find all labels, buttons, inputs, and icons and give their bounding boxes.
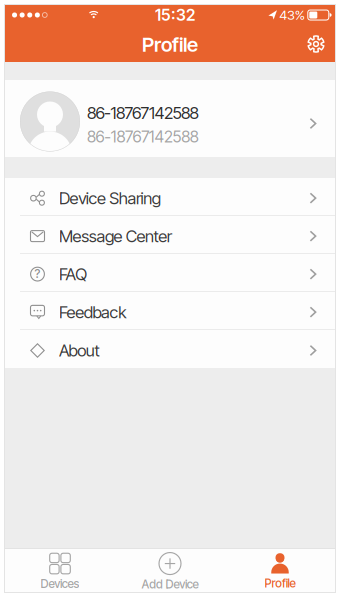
staticText: FAQ: [59, 264, 87, 284]
button[interactable]: Device Sharing: [5, 178, 335, 216]
button[interactable]: Message Center: [5, 216, 335, 254]
button[interactable]: Settings: [307, 27, 335, 61]
staticText: Message Center: [59, 226, 172, 246]
staticText: 86-18767142588: [87, 127, 199, 146]
staticText: Devices: [41, 577, 79, 591]
button[interactable]: About: [5, 330, 335, 368]
staticText: Profile: [142, 32, 198, 57]
staticText: ?: [34, 266, 40, 281]
staticText: Add Device: [141, 577, 199, 591]
staticText: 86-18767142588: [87, 103, 198, 123]
button[interactable]: Profile: [225, 549, 335, 592]
staticText: Feedback: [59, 302, 126, 322]
button[interactable]: Feedback: [5, 292, 335, 330]
button[interactable]: Devices: [5, 549, 115, 592]
button[interactable]: ?: [5, 254, 335, 292]
staticText: About: [59, 340, 99, 361]
staticText: Profile: [265, 576, 295, 590]
staticText: 43%: [279, 7, 305, 23]
staticText: Device Sharing: [59, 188, 161, 208]
button[interactable]: 86-18767142588: [5, 80, 335, 157]
staticText: 15:32: [155, 5, 195, 25]
button[interactable]: Add Device: [115, 549, 225, 592]
